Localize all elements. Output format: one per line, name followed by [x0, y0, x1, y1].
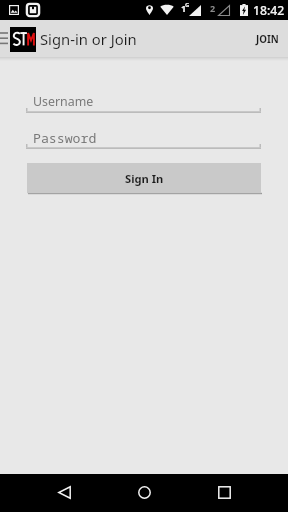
staticText: JOIN: [256, 33, 279, 46]
staticText: Sign-in or Join: [40, 29, 137, 49]
staticText: Password: [33, 129, 97, 147]
staticText: 1: [181, 2, 187, 14]
button[interactable]: Home: [123, 473, 165, 511]
button[interactable]: Password: [26, 129, 261, 149]
button[interactable]: Recent apps: [203, 473, 245, 511]
button[interactable]: STM logo: [10, 27, 36, 52]
staticText: Username: [33, 93, 94, 110]
staticText: 2: [210, 2, 216, 14]
button[interactable]: Username: [26, 93, 261, 113]
staticText: Sign In: [125, 171, 164, 186]
button[interactable]: Open navigation menu: [0, 20, 10, 57]
button[interactable]: JOIN: [240, 20, 288, 57]
button[interactable]: Back: [43, 473, 85, 511]
staticText: G: [185, 1, 190, 9]
staticText: 18:42: [253, 2, 285, 19]
button[interactable]: Sign In: [27, 163, 261, 195]
